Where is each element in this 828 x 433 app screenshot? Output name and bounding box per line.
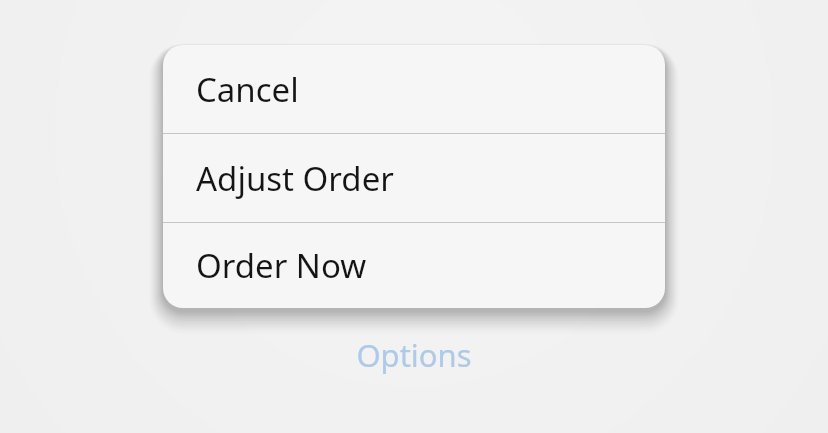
staticText: Order Now: [196, 243, 367, 288]
button[interactable]: Cancel: [163, 45, 665, 133]
button[interactable]: Options: [0, 330, 828, 380]
staticText: Adjust Order: [196, 156, 394, 201]
button[interactable]: Adjust Order: [163, 134, 665, 222]
button[interactable]: Order Now: [163, 223, 665, 308]
staticText: Options: [356, 334, 472, 376]
staticText: Cancel: [196, 67, 299, 112]
